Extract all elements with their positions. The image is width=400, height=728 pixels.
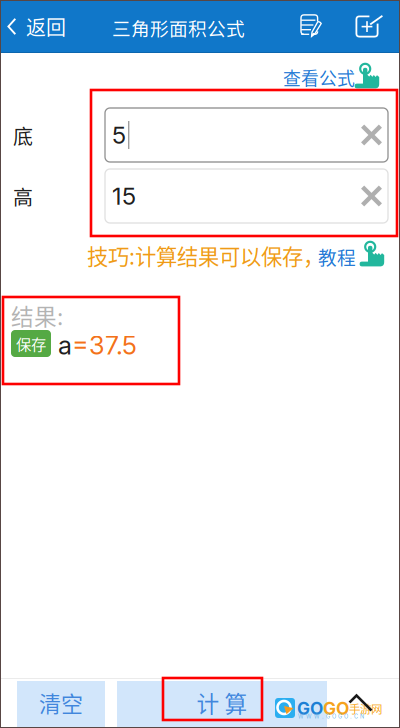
button[interactable]: 新建 bbox=[355, 15, 384, 41]
staticText: 5 bbox=[112, 120, 126, 149]
staticText: 返回 bbox=[26, 12, 66, 41]
button[interactable]: 保存 bbox=[11, 330, 51, 357]
staticText: 三角形面积公式 bbox=[112, 14, 245, 41]
staticText: 15 bbox=[112, 181, 136, 210]
button[interactable]: 清空 bbox=[17, 681, 105, 728]
button[interactable]: 查看公式 bbox=[283, 63, 389, 92]
staticText: 结果: bbox=[11, 299, 63, 332]
button[interactable]: 返回 bbox=[0, 0, 78, 53]
staticText: 底 bbox=[13, 121, 33, 150]
button[interactable]: 清除 bbox=[360, 184, 383, 207]
staticText: 手游网 bbox=[349, 700, 382, 717]
staticText: 教程 bbox=[318, 243, 356, 270]
staticText: 清空 bbox=[39, 687, 83, 718]
staticText: GO bbox=[323, 698, 349, 719]
staticText: 高 bbox=[13, 182, 33, 211]
staticText: a bbox=[58, 330, 72, 361]
staticText: W W W . G O G O . C N bbox=[298, 713, 364, 720]
staticText: 计 算 bbox=[196, 686, 247, 719]
button[interactable]: 教程 bbox=[318, 242, 390, 271]
button[interactable]: 计 算 bbox=[117, 681, 327, 728]
staticText: =37.5 bbox=[72, 330, 137, 361]
staticText: GO bbox=[297, 698, 323, 719]
staticText: 保存 bbox=[16, 332, 46, 355]
staticText: 查看公式 bbox=[283, 65, 355, 90]
staticText: 技巧:计算结果可以保存， bbox=[87, 240, 324, 271]
button[interactable]: 清除 bbox=[360, 123, 383, 146]
button[interactable]: 编辑记录 bbox=[300, 14, 324, 38]
